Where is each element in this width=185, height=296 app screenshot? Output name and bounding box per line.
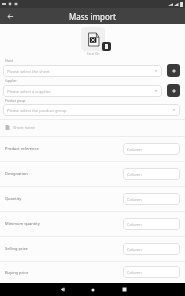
staticText: Column: [127, 222, 142, 227]
button[interactable]: Please select the sheet: [3, 65, 162, 77]
staticText: Minimum quantity: [5, 221, 123, 226]
button[interactable]: Back: [55, 283, 69, 296]
staticText: Column: [127, 247, 142, 252]
staticText: Buying price: [5, 270, 123, 275]
button[interactable]: Please select the product group: [3, 104, 180, 116]
staticText: Column: [127, 197, 142, 202]
staticText: Please select the sheet: [7, 69, 50, 74]
button[interactable]: Please select a supplier: [3, 85, 162, 97]
button[interactable]: Choose Excel file: [81, 27, 105, 51]
staticText: Designation: [5, 171, 123, 176]
staticText: Selling price: [5, 246, 123, 251]
staticText: Please select a supplier: [7, 89, 51, 94]
staticText: Sheet: [5, 59, 13, 63]
button[interactable]: Product reference: [0, 136, 185, 161]
staticText: Sheet name: [13, 125, 36, 130]
staticText: Please select the product group: [7, 108, 67, 113]
staticText: Product group: [5, 99, 26, 103]
staticText: Quantity: [5, 196, 123, 201]
button[interactable]: Add Sheet: [167, 64, 180, 77]
staticText: Supplier: [5, 79, 17, 83]
staticText: Column: [127, 270, 142, 275]
button[interactable]: Add Supplier: [167, 84, 180, 97]
button[interactable]: Selling price: [0, 236, 185, 261]
button[interactable]: Buying price: [0, 261, 185, 283]
button[interactable]: Back: [4, 10, 16, 22]
staticText: Product reference: [5, 146, 123, 151]
staticText: Column: [127, 147, 142, 152]
button[interactable]: Designation: [0, 161, 185, 186]
button[interactable]: Quantity: [0, 186, 185, 211]
button[interactable]: Home: [86, 283, 100, 296]
button[interactable]: Minimum quantity: [0, 211, 185, 236]
staticText: Excel file: [87, 52, 100, 56]
staticText: Mass import: [69, 11, 116, 22]
button[interactable]: Pick file: [102, 42, 111, 51]
staticText: Column: [127, 172, 142, 177]
button[interactable]: Recents: [117, 283, 131, 296]
